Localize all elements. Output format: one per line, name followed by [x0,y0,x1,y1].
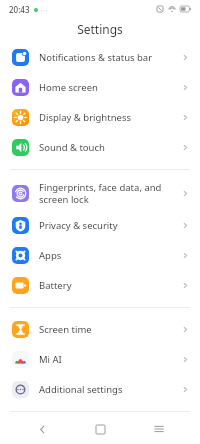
staticText: Home screen [39,81,98,94]
staticText: Screen time [39,323,92,336]
staticText: 20:43 [9,4,30,15]
staticText: Mi AI [39,353,62,366]
staticText: Display & brightness [39,111,131,124]
button[interactable]: Home [83,414,117,444]
button[interactable]: Fingerprints, face data, and screen lock [0,176,200,210]
button[interactable]: Battery [0,270,200,300]
staticText: Notifications & status bar [39,51,153,64]
button[interactable]: Notifications & status bar [0,42,200,72]
button[interactable]: Recents [142,414,176,444]
staticText: Sound & touch [39,141,105,154]
staticText: Additional settings [39,383,123,396]
staticText: Apps [39,249,62,262]
button[interactable]: Mi AI [0,344,200,374]
button[interactable]: Apps [0,240,200,270]
staticText: Privacy & security [39,219,118,232]
button[interactable]: Home screen [0,72,200,102]
button[interactable]: Privacy & security [0,210,200,240]
button[interactable]: Sound & touch [0,132,200,162]
staticText: Settings [77,21,123,37]
staticText: Battery [39,279,72,292]
button[interactable]: Screen time [0,314,200,344]
button[interactable]: Display & brightness [0,102,200,132]
button[interactable]: Additional settings [0,374,200,404]
staticText: Fingerprints, face data, and screen lock [39,181,175,206]
button[interactable]: Back [25,414,59,444]
